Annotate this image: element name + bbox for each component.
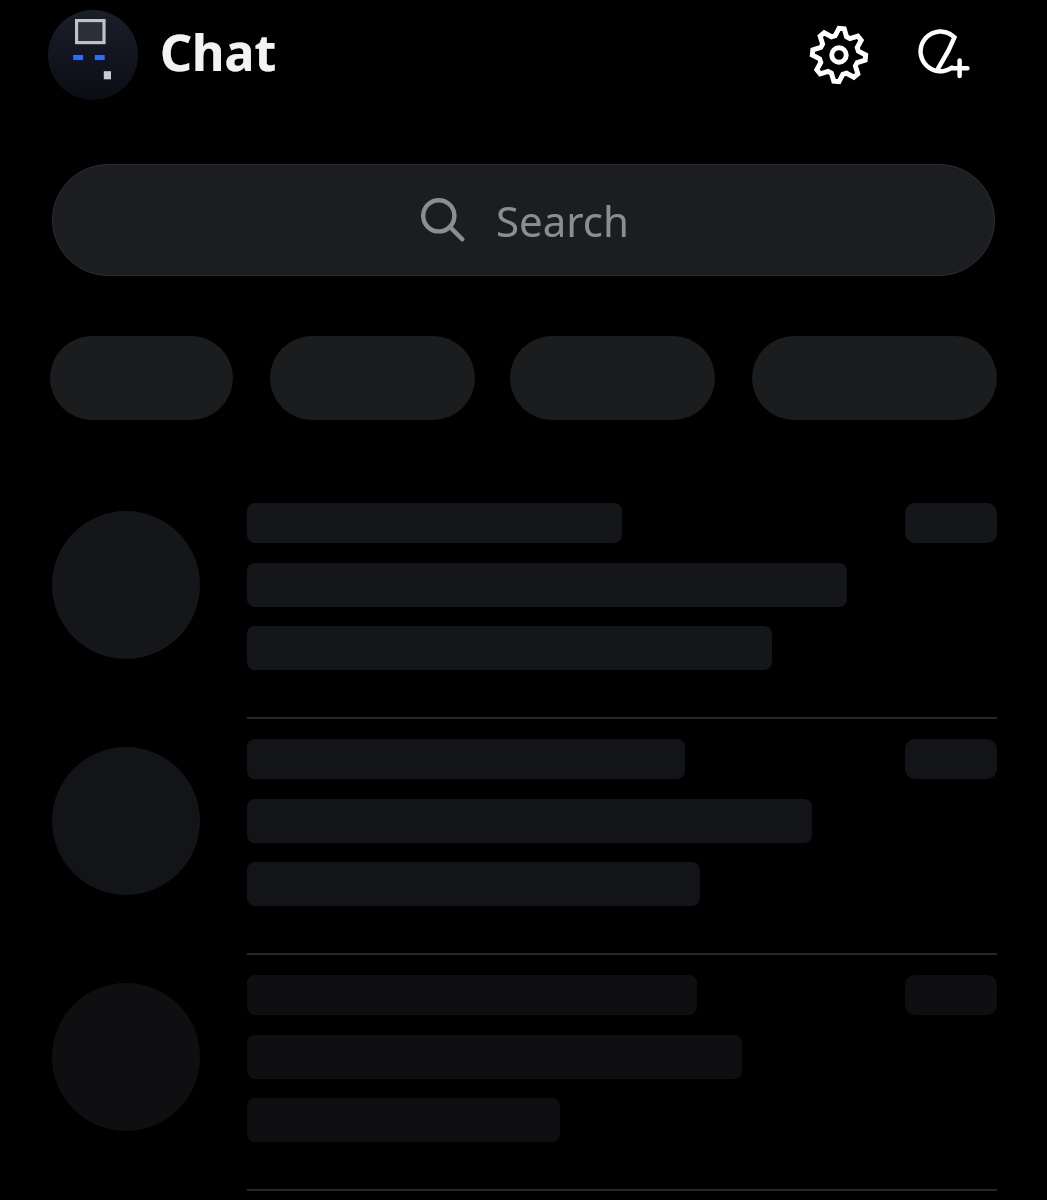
staticText: Chat (160, 18, 277, 86)
button[interactable]: Loading conversation (0, 483, 1047, 717)
button[interactable]: Loading conversation (0, 719, 1047, 953)
button[interactable]: Filter (50, 336, 233, 420)
button[interactable]: Filter (510, 336, 715, 420)
button[interactable]: New chat (905, 16, 983, 94)
button[interactable]: Filter (752, 336, 997, 420)
button[interactable]: Loading conversation (0, 955, 1047, 1189)
button[interactable]: Settings (800, 16, 878, 94)
button[interactable]: Profile (48, 10, 138, 100)
button[interactable]: Filter (270, 336, 475, 420)
button[interactable]: Search (52, 164, 995, 276)
staticText: Search (496, 192, 629, 249)
